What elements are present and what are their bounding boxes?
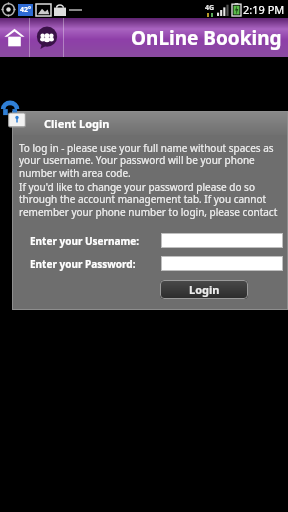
staticText: Login [189,282,220,297]
staticText: Enter your Username: [30,234,140,248]
button[interactable]: Login [160,280,248,299]
staticText: To log in - please use your full name wi… [19,141,281,180]
staticText: If you'd like to change your password pl… [19,180,281,219]
staticText: 2:19 PM [243,2,285,17]
staticText: Enter your Password: [30,257,136,271]
staticText: Client Login [44,116,110,131]
staticText: 4G [205,3,215,13]
staticText: 42° [20,5,31,15]
staticText: OnLine Booking [131,25,282,51]
button[interactable]: Contacts [30,18,63,57]
button[interactable]: Home [0,18,29,57]
button[interactable] [161,233,283,248]
button[interactable] [161,256,283,271]
